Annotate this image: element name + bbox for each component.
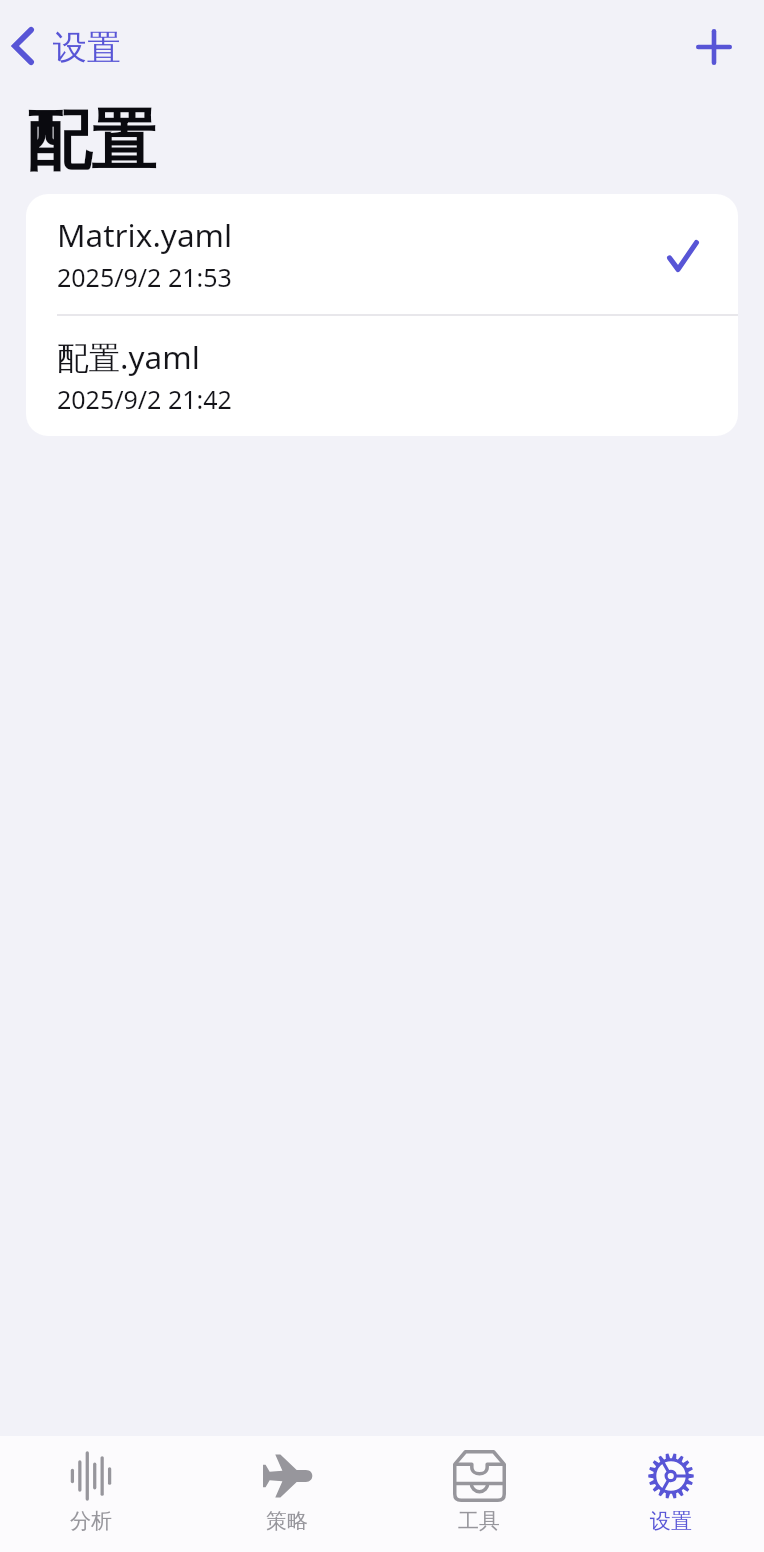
button[interactable]: 设置 xyxy=(4,18,129,77)
other: Selected xyxy=(667,240,699,272)
staticText: 分析 xyxy=(70,1508,112,1534)
button[interactable]: Matrix.yaml xyxy=(26,194,738,314)
staticText: 配置 xyxy=(26,100,156,182)
staticText: 设置 xyxy=(650,1508,692,1534)
staticText: 配置.yaml xyxy=(57,335,200,378)
button[interactable]: 工具 xyxy=(404,1436,554,1552)
button[interactable]: 分析 xyxy=(16,1436,166,1552)
staticText: 2025/9/2 21:53 xyxy=(57,260,232,294)
button[interactable]: 策略 xyxy=(212,1436,362,1552)
staticText: Matrix.yaml xyxy=(57,213,233,256)
staticText: 2025/9/2 21:42 xyxy=(57,382,232,416)
staticText: 策略 xyxy=(266,1508,308,1534)
staticText: 设置 xyxy=(53,26,121,69)
staticText: 工具 xyxy=(458,1508,500,1534)
button[interactable]: 设置 xyxy=(596,1436,746,1552)
button[interactable]: Add configuration xyxy=(674,7,754,87)
button[interactable]: 配置.yaml xyxy=(26,316,738,436)
